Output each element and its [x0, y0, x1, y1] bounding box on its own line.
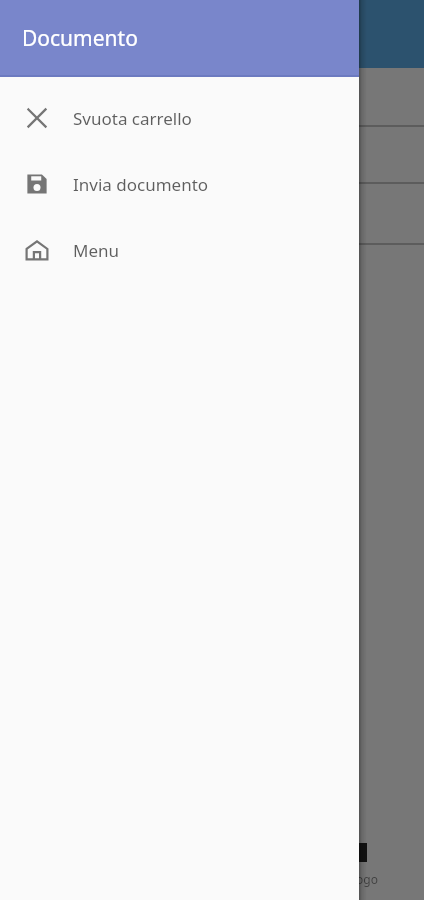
- staticText: Invia documento: [73, 173, 209, 196]
- button[interactable]: Menu: [0, 217, 359, 283]
- other: Svuota carrello: [24, 105, 50, 131]
- button[interactable]: Invia documento: [0, 151, 359, 217]
- staticText: Svuota carrello: [73, 107, 192, 130]
- other: Menu: [24, 237, 50, 263]
- staticText: Documento: [22, 24, 138, 53]
- button[interactable]: Svuota carrello: [0, 85, 359, 151]
- other: Invia documento: [24, 171, 50, 197]
- staticText: ogo: [356, 871, 378, 887]
- staticText: Menu: [73, 239, 120, 262]
